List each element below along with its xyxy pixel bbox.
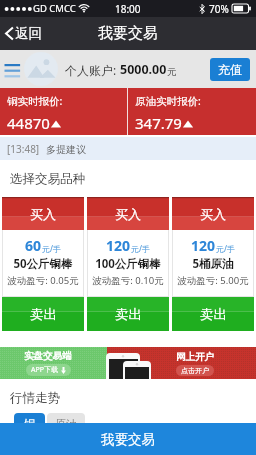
staticText: 波动盈亏: 0.10元 [87,274,169,287]
button[interactable]: 网上开户 [107,347,256,379]
staticText: 铜实时报价: [7,94,63,108]
staticText: 个人账户: [65,62,120,78]
staticText: 347.79 [135,113,182,133]
button[interactable]: [13:48] [0,137,256,160]
button[interactable]: 卖出 [87,297,169,331]
staticText: 买入 [30,206,56,222]
staticText: 120 [191,236,216,255]
staticText: 100公斤铜棒 [87,256,169,272]
staticText: 波动盈亏: 5.00元 [172,274,254,287]
button[interactable]: 铜实时报价: [0,88,127,135]
staticText: 充值 [218,62,242,77]
staticText: 原油实时报价: [135,94,201,108]
staticText: 卖出 [200,306,227,323]
staticText: 网上开户 [176,351,214,363]
staticText: 44870 [7,113,50,133]
button[interactable]: 买入 [172,197,254,297]
button[interactable]: 返回 [0,17,48,50]
staticText: 50公斤铜棒 [2,256,84,272]
staticText: 元/手 [42,243,61,254]
staticText: APP下载 [31,365,58,375]
staticText: 元 [167,66,177,78]
staticText: [13:48] [7,142,40,156]
staticText: 实盘交易端 [24,350,72,362]
staticText: 多提建议 [46,143,86,156]
staticText: 我要交易 [101,431,155,448]
staticText: 18:00 [115,2,141,16]
staticText: 120 [106,236,131,255]
staticText: 5000.00 [120,61,167,78]
button[interactable]: 卖出 [2,297,84,331]
staticText: 行情走势 [10,390,60,406]
staticText: 买入 [200,206,226,222]
staticText: 点击开户 [181,366,209,375]
button[interactable]: 充值 [210,58,250,81]
staticText: 返回 [15,25,42,42]
staticText: 铜 [24,417,35,431]
button[interactable]: 卖出 [172,297,254,331]
staticText: GD CMCC [33,2,76,15]
button[interactable]: 原油 [47,413,85,435]
staticText: 元/手 [131,243,150,254]
staticText: 波动盈亏: 0.05元 [2,274,84,287]
button[interactable]: Menu [4,59,24,79]
button[interactable]: 我要交易 [0,423,256,455]
staticText: 原油 [55,417,77,431]
staticText: 5桶原油 [172,256,254,272]
button[interactable]: 买入 [2,197,84,297]
staticText: 元/手 [216,243,235,254]
button[interactable]: 铜 [14,413,45,435]
staticText: 60 [25,236,42,255]
staticText: 70% [209,2,229,16]
staticText: 买入 [115,206,141,222]
button[interactable]: 原油实时报价: [128,88,256,135]
button[interactable]: 实盘交易端 [0,347,107,379]
staticText: 卖出 [30,306,57,323]
staticText: 卖出 [115,306,142,323]
staticText: 选择交易品种 [10,171,85,187]
button[interactable]: 买入 [87,197,169,297]
staticText: 我要交易 [98,24,158,43]
